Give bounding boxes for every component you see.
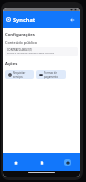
staticText: serviços (13, 75, 23, 79)
staticText: Conteúdo público (5, 40, 38, 45)
staticText: Configurações (5, 32, 35, 38)
button[interactable]: Requisitar (5, 70, 34, 79)
button[interactable]: Sair (66, 14, 77, 25)
button[interactable]: Formas de (36, 70, 66, 79)
staticText: Ações (5, 61, 18, 67)
staticText: Synchat (13, 16, 36, 24)
staticText: Requisitar (13, 71, 26, 75)
staticText: pagamento (44, 75, 59, 79)
staticText: Formas de (44, 71, 57, 75)
staticText: CONTRATO-48041(1) (7, 48, 33, 52)
button[interactable]: Configurações (54, 153, 80, 171)
staticText: acesse o conteudo completo deste contrat… (7, 52, 55, 55)
button[interactable]: Início (3, 153, 28, 171)
button[interactable]: Documentos (28, 153, 54, 171)
